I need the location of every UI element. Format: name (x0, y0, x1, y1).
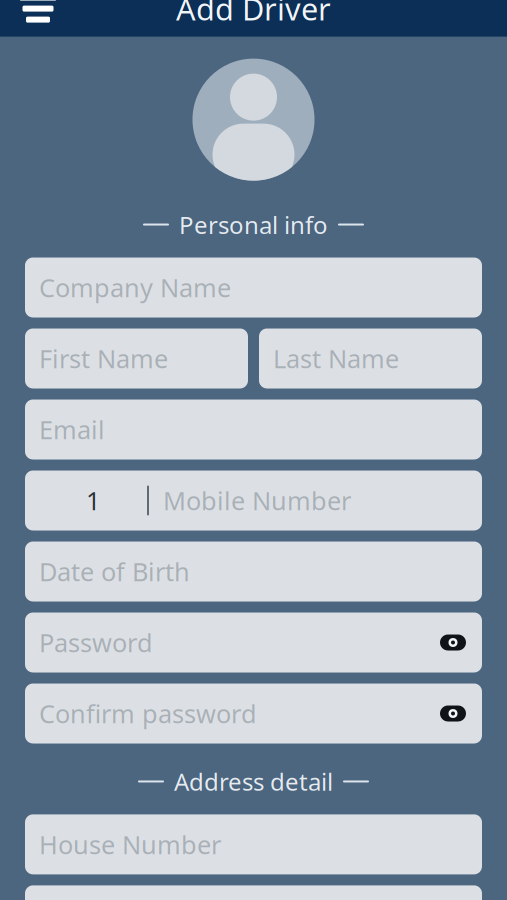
button[interactable]: Company Name (25, 257, 482, 317)
staticText: Add Driver (176, 0, 331, 29)
staticText: Last Name (273, 342, 399, 375)
button[interactable]: Password (25, 612, 482, 672)
staticText: First Name (39, 342, 168, 375)
button[interactable]: Confirm password (25, 683, 482, 743)
button[interactable]: Last Name (259, 328, 482, 388)
staticText: Password (39, 626, 153, 659)
button[interactable]: House Number (25, 814, 482, 874)
staticText: Company Name (39, 271, 231, 304)
staticText: House Number (39, 828, 221, 861)
button[interactable]: Menu (16, 0, 60, 29)
button[interactable]: Date of Birth (25, 541, 482, 601)
staticText: Mobile Number (163, 484, 351, 517)
staticText: Email (39, 413, 105, 446)
staticText: 1 (86, 484, 100, 517)
button[interactable]: First Name (25, 328, 248, 388)
staticText: Personal info (179, 209, 328, 240)
button[interactable]: Email (25, 399, 482, 459)
button[interactable]: 1 (25, 470, 482, 530)
staticText: Confirm password (39, 697, 257, 730)
staticText: Date of Birth (39, 555, 190, 588)
staticText: Address detail (174, 765, 333, 797)
button[interactable]: Street (25, 885, 482, 900)
